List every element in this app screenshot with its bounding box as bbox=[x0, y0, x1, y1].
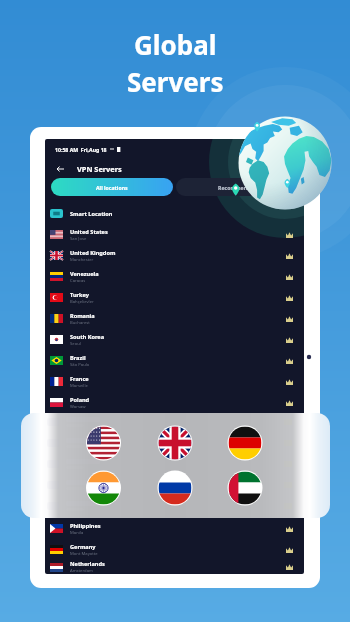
button[interactable]: France bbox=[45, 371, 304, 392]
staticText: Australia bbox=[70, 501, 96, 509]
button[interactable]: All locations bbox=[51, 178, 173, 196]
staticText: Bucharest bbox=[70, 320, 90, 326]
button[interactable]: Venezuela bbox=[45, 266, 304, 287]
staticText: Turkey bbox=[70, 291, 89, 299]
button[interactable]: Italy bbox=[45, 413, 304, 434]
staticText: Marseille bbox=[70, 383, 88, 389]
button[interactable]: Recommended bbox=[176, 178, 298, 196]
staticText: Mont Mayotte bbox=[70, 551, 98, 557]
staticText: Philippines bbox=[70, 522, 101, 530]
staticText: France bbox=[70, 375, 89, 383]
button[interactable]: Australia bbox=[45, 497, 304, 518]
button[interactable]: Poland bbox=[45, 392, 304, 413]
button[interactable]: Canada bbox=[45, 455, 304, 476]
button[interactable]: Germany bbox=[45, 539, 304, 560]
button[interactable]: South Korea bbox=[45, 329, 304, 350]
staticText: Manila bbox=[70, 530, 84, 536]
staticText: Servers bbox=[127, 64, 224, 99]
button[interactable]: Romania bbox=[45, 308, 304, 329]
staticText: Germany bbox=[70, 543, 96, 551]
staticText: Romania bbox=[70, 312, 95, 320]
staticText: United Kingdom bbox=[70, 249, 116, 257]
staticText: Global bbox=[134, 27, 217, 62]
button[interactable]: Philippines bbox=[45, 518, 304, 539]
staticText: Venezuela bbox=[70, 270, 99, 278]
staticText: Amsterdam bbox=[70, 568, 93, 574]
staticText: Netherlands bbox=[70, 560, 105, 568]
staticText: San Jose bbox=[70, 236, 87, 242]
staticText: VPN Servers bbox=[77, 164, 122, 174]
button[interactable]: Japan bbox=[45, 476, 304, 497]
button[interactable]: United States bbox=[45, 224, 304, 245]
button[interactable]: Back bbox=[53, 162, 67, 176]
button[interactable]: Turkey bbox=[45, 287, 304, 308]
button[interactable]: Spain bbox=[45, 434, 304, 455]
staticText: United States bbox=[70, 228, 108, 236]
staticText: Recommended bbox=[218, 184, 257, 191]
staticText: Smart Location bbox=[70, 210, 113, 218]
staticText: 10:58 AM Fri,Aug 18 bbox=[55, 146, 107, 153]
button[interactable]: Netherlands bbox=[45, 560, 304, 574]
staticText: Caracas bbox=[70, 278, 86, 284]
button[interactable]: Smart Location bbox=[45, 203, 304, 224]
staticText: Bahçelievler bbox=[70, 299, 94, 305]
staticText: Manchester bbox=[70, 257, 94, 263]
staticText: Warsaw bbox=[70, 404, 86, 410]
button[interactable]: Brazil bbox=[45, 350, 304, 371]
staticText: Brazil bbox=[70, 354, 86, 362]
staticText: All locations bbox=[96, 184, 128, 191]
staticText: Seoul bbox=[70, 341, 81, 347]
staticText: South Korea bbox=[70, 333, 105, 341]
button[interactable]: United Kingdom bbox=[45, 245, 304, 266]
staticText: Poland bbox=[70, 396, 90, 404]
staticText: São Paulo bbox=[70, 362, 90, 368]
